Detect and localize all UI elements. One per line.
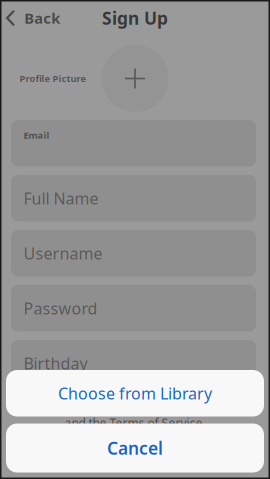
button[interactable]: Add profile picture bbox=[101, 45, 168, 112]
staticText: and the Terms of Service. bbox=[64, 415, 205, 431]
button[interactable]: Email bbox=[11, 120, 256, 166]
staticText: Password bbox=[23, 298, 97, 319]
staticText: Choose from Library bbox=[58, 383, 212, 404]
button[interactable]: Full Name bbox=[11, 175, 256, 221]
button[interactable]: Username bbox=[11, 230, 256, 276]
staticText: Cancel bbox=[107, 436, 163, 459]
staticText: Sign Up bbox=[102, 6, 168, 29]
button[interactable]: Password bbox=[11, 285, 256, 331]
staticText: By signing up you agree to our Privacy P… bbox=[38, 400, 232, 413]
staticText: Profile Picture bbox=[19, 72, 86, 85]
button[interactable]: Choose from Library bbox=[6, 370, 264, 416]
staticText: Full Name bbox=[23, 188, 98, 209]
staticText: Back bbox=[24, 8, 60, 28]
staticText: Birthday bbox=[23, 353, 87, 374]
staticText: Username bbox=[23, 243, 102, 264]
staticText: Email bbox=[23, 129, 49, 141]
button[interactable]: Cancel bbox=[6, 423, 264, 472]
button[interactable]: Back bbox=[0, 0, 68, 36]
button[interactable]: Birthday bbox=[11, 340, 256, 386]
